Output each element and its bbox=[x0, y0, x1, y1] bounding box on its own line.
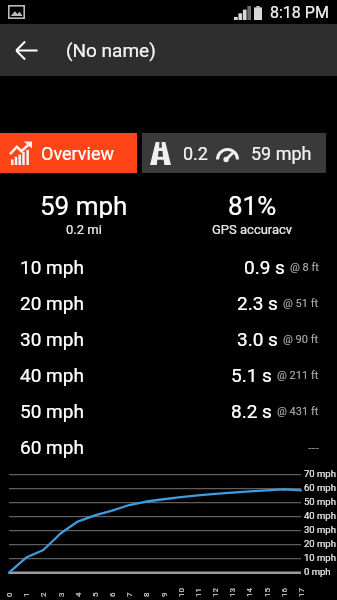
staticText: 10 mph bbox=[20, 256, 84, 278]
button[interactable]: 0.2 bbox=[142, 133, 326, 173]
staticText: 8:18 PM bbox=[270, 3, 329, 22]
staticText: 0 bbox=[5, 592, 14, 597]
staticText: @ 90 ft bbox=[283, 333, 319, 346]
button[interactable]: 20 mph bbox=[0, 285, 337, 321]
staticText: 3 bbox=[57, 592, 66, 597]
staticText: 15 bbox=[263, 588, 272, 597]
staticText: 1 bbox=[22, 592, 31, 597]
staticText: 30 mph bbox=[304, 524, 336, 535]
staticText: 12 bbox=[211, 588, 220, 597]
staticText: 10 bbox=[177, 588, 186, 597]
button[interactable]: 50 mph bbox=[0, 393, 337, 429]
staticText: 3.0 s bbox=[237, 328, 278, 350]
staticText: @ 8 ft bbox=[290, 261, 319, 274]
staticText: 8 bbox=[142, 592, 151, 597]
staticText: 50 mph bbox=[304, 496, 336, 507]
button[interactable]: Back bbox=[0, 24, 52, 76]
staticText: @ 51 ft bbox=[283, 297, 319, 310]
staticText: 2.3 s bbox=[237, 292, 278, 314]
staticText: 60 mph bbox=[20, 436, 84, 458]
staticText: 7 bbox=[125, 592, 134, 597]
button[interactable]: 40 mph bbox=[0, 357, 337, 393]
staticText: 10 mph bbox=[304, 552, 336, 563]
staticText: 2 bbox=[39, 592, 48, 597]
button[interactable]: 10 mph bbox=[0, 249, 337, 285]
staticText: 5 bbox=[91, 592, 100, 597]
button[interactable]: 60 mph bbox=[0, 429, 337, 465]
staticText: @ 211 ft bbox=[277, 369, 319, 382]
staticText: 11 bbox=[194, 588, 203, 597]
staticText: 59 mph bbox=[40, 191, 128, 218]
staticText: 8.2 s bbox=[231, 400, 272, 422]
staticText: 13 bbox=[228, 588, 237, 597]
staticText: 20 mph bbox=[20, 292, 84, 314]
staticText: 40 mph bbox=[304, 510, 336, 521]
staticText: (No name) bbox=[66, 39, 156, 61]
staticText: 0.2 bbox=[183, 143, 208, 164]
staticText: 70 mph bbox=[304, 468, 336, 479]
staticText: 60 mph bbox=[304, 482, 336, 493]
staticText: 6 bbox=[108, 592, 117, 597]
staticText: 0.9 s bbox=[244, 256, 285, 278]
staticText: 17 bbox=[297, 588, 306, 597]
staticText: 14 bbox=[245, 588, 254, 597]
staticText: 59 mph bbox=[251, 143, 312, 164]
staticText: @ 431 ft bbox=[277, 405, 319, 418]
button[interactable]: 30 mph bbox=[0, 321, 337, 357]
staticText: 50 mph bbox=[20, 400, 84, 422]
staticText: 5.1 s bbox=[231, 364, 272, 386]
staticText: --- bbox=[308, 440, 319, 455]
staticText: Overview bbox=[41, 143, 114, 164]
staticText: 0 mph bbox=[304, 566, 331, 577]
staticText: 0.2 mi bbox=[66, 222, 102, 234]
staticText: 30 mph bbox=[20, 328, 84, 350]
staticText: 4 bbox=[74, 592, 83, 597]
staticText: 40 mph bbox=[20, 364, 84, 386]
staticText: 20 mph bbox=[304, 538, 336, 549]
staticText: 81% bbox=[228, 191, 277, 218]
staticText: GPS accuracy bbox=[212, 222, 293, 234]
staticText: 9 bbox=[160, 592, 169, 597]
button[interactable]: Overview bbox=[0, 133, 137, 173]
staticText: 16 bbox=[280, 588, 289, 597]
